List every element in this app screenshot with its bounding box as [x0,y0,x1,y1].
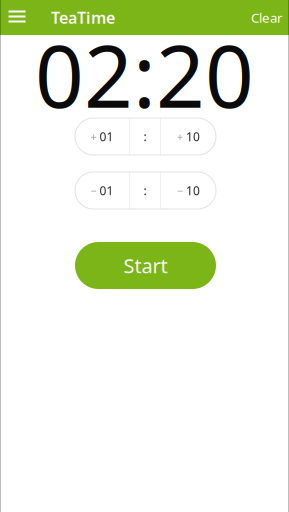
button[interactable]: Start [75,242,216,289]
button[interactable]: TeaTime [51,0,141,35]
staticText: 02:20 [35,18,254,131]
button[interactable]: − [75,172,129,209]
staticText: Clear [251,9,283,26]
button[interactable]: + [161,118,216,155]
staticText: 01 [99,182,113,198]
button[interactable]: − [161,172,216,209]
staticText: : [143,128,146,144]
staticText: TeaTime [51,7,115,28]
staticText: − [177,183,183,198]
button[interactable]: Clear [237,0,283,35]
button[interactable]: + [75,118,129,155]
staticText: : [143,182,146,198]
staticText: + [90,129,96,144]
button[interactable]: Menu [0,0,34,35]
staticText: Start [123,252,167,279]
staticText: − [90,183,96,198]
staticText: 01 [99,128,113,144]
staticText: 10 [186,128,200,144]
staticText: 10 [186,182,200,198]
staticText: + [177,129,183,144]
